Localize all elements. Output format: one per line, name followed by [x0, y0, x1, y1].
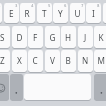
button[interactable]: X — [12, 50, 27, 72]
button[interactable]: E — [4, 3, 19, 23]
button[interactable]: W — [0, 3, 2, 23]
button[interactable]: C — [28, 50, 43, 72]
button[interactable]: B — [61, 50, 76, 72]
button[interactable]: Z — [0, 50, 10, 72]
button[interactable]: F — [28, 26, 43, 48]
button[interactable]: I — [86, 3, 101, 23]
button[interactable]: R — [20, 3, 35, 23]
button[interactable]: U — [70, 3, 85, 23]
button[interactable]: O — [103, 3, 106, 23]
button[interactable]: N — [78, 50, 93, 72]
button[interactable]: K — [94, 26, 106, 48]
button[interactable]: Y — [53, 3, 68, 23]
button[interactable]: T — [37, 3, 52, 23]
button[interactable]: Period — [94, 74, 106, 100]
button[interactable]: J — [78, 26, 93, 48]
button[interactable]: Comma — [10, 74, 23, 100]
button[interactable]: Emoji — [0, 74, 9, 100]
button[interactable]: M — [94, 50, 106, 72]
button[interactable]: D — [12, 26, 27, 48]
button[interactable]: S — [0, 26, 10, 48]
button[interactable]: G — [45, 26, 60, 48]
button[interactable]: V — [45, 50, 60, 72]
button[interactable]: H — [61, 26, 76, 48]
